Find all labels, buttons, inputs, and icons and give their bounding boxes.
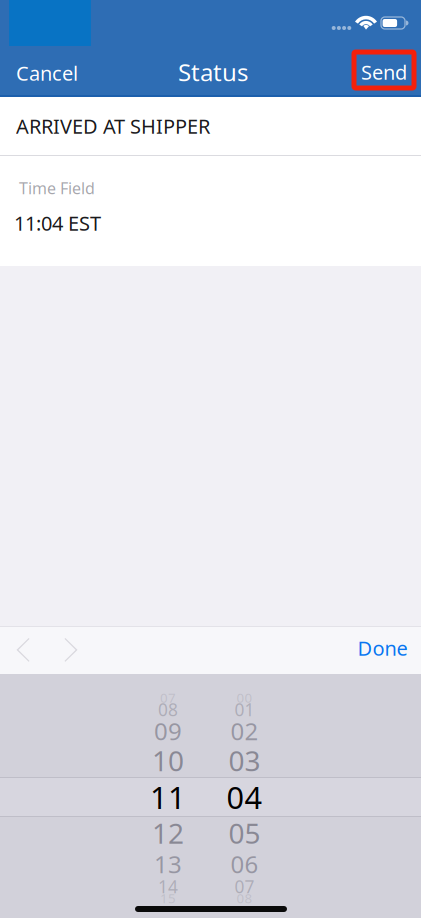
button[interactable]: Cancel	[0, 49, 77, 97]
staticText: Status	[178, 56, 248, 88]
button[interactable]: Done	[344, 626, 421, 674]
staticText: 06	[230, 848, 258, 880]
staticText: 02	[230, 715, 258, 747]
staticText: 11	[150, 777, 186, 817]
staticText: 10	[152, 742, 184, 779]
button[interactable]: Time Field	[0, 156, 421, 266]
staticText: 00	[236, 689, 252, 706]
staticText: 14	[158, 875, 178, 898]
button[interactable]: ARRIVED AT SHIPPER	[0, 97, 421, 155]
staticText: Cancel	[16, 60, 78, 86]
staticText: 11:04 EST	[14, 210, 101, 236]
staticText: 13	[154, 848, 182, 880]
button[interactable]: Next field	[47, 626, 95, 674]
staticText: 07	[234, 875, 254, 898]
staticText: 08	[158, 698, 178, 721]
staticText: 04	[226, 777, 262, 817]
staticText: Time Field	[19, 177, 95, 199]
button[interactable]: Previous field	[0, 626, 47, 674]
staticText: 05	[228, 814, 260, 852]
staticText: Send	[361, 59, 407, 85]
staticText: 09	[154, 715, 182, 747]
staticText: 15	[160, 889, 176, 907]
button[interactable]: Send	[352, 50, 416, 90]
staticText: 08	[236, 889, 252, 907]
button[interactable]: Hour, 11	[0, 0, 89, 31]
staticText: 12	[152, 814, 184, 852]
staticText: 07	[160, 689, 176, 706]
staticText: 03	[228, 742, 260, 779]
staticText: Done	[357, 635, 407, 661]
staticText: ARRIVED AT SHIPPER	[16, 113, 210, 139]
button[interactable]: Minute, 04	[0, 0, 89, 31]
staticText: 01	[234, 698, 254, 721]
